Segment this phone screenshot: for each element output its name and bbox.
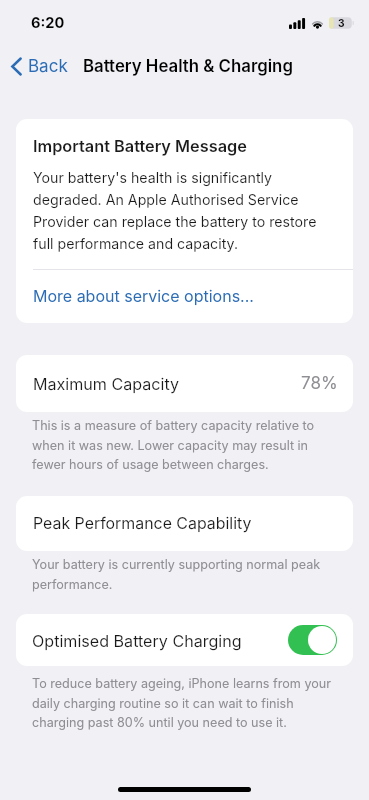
staticText: 3 bbox=[338, 17, 345, 29]
staticText: Maximum Capacity bbox=[33, 374, 180, 393]
button[interactable]: Peak Performance Capability bbox=[16, 496, 353, 551]
staticText: 78% bbox=[301, 373, 338, 394]
staticText: More about service options... bbox=[33, 286, 254, 305]
staticText: To reduce battery ageing, iPhone learns … bbox=[32, 676, 335, 730]
button[interactable]: Maximum Capacity bbox=[16, 355, 353, 412]
staticText: Optimised Battery Charging bbox=[32, 631, 242, 650]
staticText: Back bbox=[28, 56, 68, 77]
other: Back bbox=[11, 57, 22, 76]
staticText: Battery Health & Charging bbox=[83, 56, 293, 76]
staticText: Your battery is currently supporting nor… bbox=[32, 557, 335, 592]
staticText: Your battery's health is significantly d… bbox=[33, 169, 336, 252]
button[interactable]: More about service options... bbox=[16, 270, 353, 323]
button[interactable]: Optimised Battery Charging bbox=[16, 614, 353, 666]
button[interactable]: Back bbox=[0, 52, 76, 81]
button[interactable]: Optimised Battery Charging bbox=[288, 625, 337, 655]
staticText: This is a measure of battery capacity re… bbox=[32, 418, 335, 472]
staticText: 6:20 bbox=[31, 14, 65, 32]
staticText: Important Battery Message bbox=[33, 136, 247, 156]
staticText: Peak Performance Capability bbox=[33, 514, 252, 533]
